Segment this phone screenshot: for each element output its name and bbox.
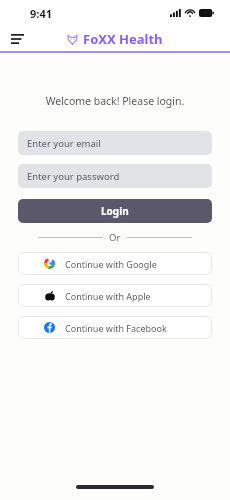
staticText: Continue with Apple <box>65 290 151 302</box>
button[interactable]: Continue with Google <box>18 252 212 275</box>
staticText: Continue with Facebook <box>65 322 167 334</box>
button[interactable]: Open navigation menu <box>6 28 28 50</box>
staticText: Enter your password <box>27 170 120 183</box>
staticText: Or <box>109 231 121 244</box>
staticText: Welcome back! Please login. <box>18 94 212 108</box>
staticText: 9:41 <box>30 6 52 21</box>
staticText: FoXX Health <box>83 30 163 48</box>
staticText: Continue with Google <box>65 258 157 270</box>
button[interactable]: Enter your password <box>18 164 212 188</box>
button[interactable]: Login <box>18 199 212 223</box>
staticText: Login <box>101 204 129 218</box>
button[interactable]: Continue with Apple <box>18 284 212 307</box>
staticText: Enter your email <box>27 137 101 150</box>
button[interactable]: Continue with Facebook <box>18 316 212 339</box>
button[interactable]: Enter your email <box>18 131 212 155</box>
